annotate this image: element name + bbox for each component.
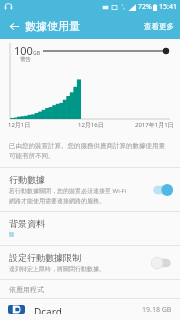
button[interactable]: Dcard — [0, 299, 180, 320]
staticText: GB — [33, 50, 40, 57]
staticText: 已由您的裝置計算。您的服務供應商計算的數據使用量 可能有所不同。 — [9, 142, 165, 160]
staticText: 若行動數據關閉，您的裝置必須連接至 Wi-Fi 網路才能使用需要連接網路的服務。 — [9, 187, 127, 205]
button[interactable]: Toggle off — [151, 256, 173, 270]
staticText: 15:41 — [159, 2, 177, 12]
button[interactable]: 行動數據 — [0, 168, 180, 211]
button[interactable]: 查看更多 — [138, 18, 180, 35]
staticText: 行動數據 — [9, 174, 45, 185]
staticText: 查看更多 — [144, 22, 174, 31]
staticText: 數據使用量 — [25, 19, 80, 33]
staticText: 12月1日 — [8, 121, 31, 129]
button[interactable]: Back — [4, 16, 24, 36]
staticText: 2017年1月1日 — [135, 121, 174, 129]
staticText: 背景資料 — [9, 218, 45, 229]
staticText: 72% — [138, 2, 152, 12]
button[interactable]: Toggle on — [151, 183, 173, 197]
staticText: 依應用程式 — [9, 285, 44, 294]
staticText: 12月16日 — [78, 121, 104, 129]
button[interactable]: 設定行動數據限制 — [0, 246, 180, 279]
staticText: 達到特定上限時，將關閉行動數據。 — [9, 265, 105, 273]
staticText: 19.18 GB — [142, 305, 172, 314]
button[interactable]: 背景資料 — [0, 212, 180, 245]
staticText: 設定行動數據限制 — [9, 252, 81, 263]
staticText: 100 — [14, 43, 33, 58]
staticText: Dcard — [34, 305, 142, 314]
staticText: 警告 — [20, 56, 31, 63]
